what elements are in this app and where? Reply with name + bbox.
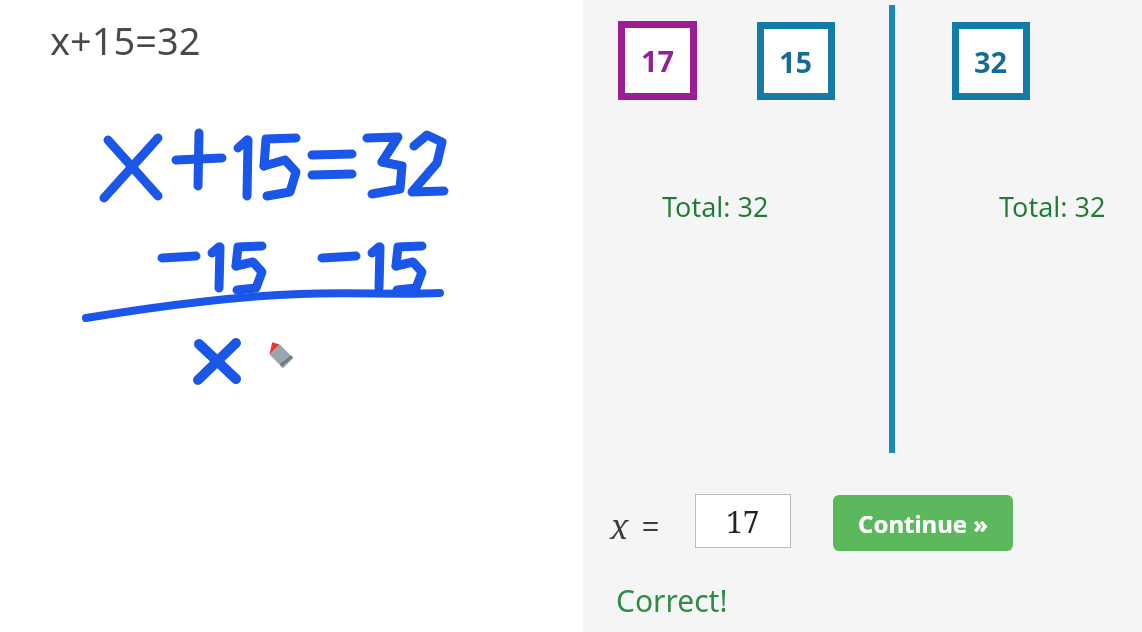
staticText: x+15=32 <box>50 14 201 66</box>
staticText: 15 <box>779 42 813 81</box>
staticText: Correct! <box>616 580 728 621</box>
button[interactable]: Number 17 <box>618 21 697 100</box>
button[interactable]: Continue » <box>833 495 1013 551</box>
staticText: Continue » <box>858 507 989 540</box>
staticText: = <box>641 503 661 549</box>
button[interactable]: 17 <box>695 494 791 548</box>
staticText: 32 <box>974 42 1008 81</box>
button[interactable]: Number 32 <box>952 22 1030 100</box>
staticText: 17 <box>641 41 675 80</box>
staticText: Total: 32 <box>999 188 1106 225</box>
button[interactable]: Number 15 <box>757 22 835 100</box>
staticText: Total: 32 <box>662 188 769 225</box>
staticText: 17 <box>726 501 760 542</box>
staticText: x <box>610 503 629 549</box>
